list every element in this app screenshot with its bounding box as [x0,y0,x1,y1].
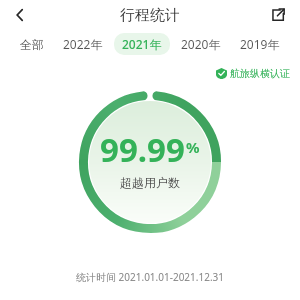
staticText: 2019年 [240,36,280,52]
staticText: 2020年 [181,36,221,52]
button[interactable]: 航旅纵横认证 [216,67,290,80]
button[interactable]: 2020年 [173,33,229,55]
button[interactable]: 2021年 [114,33,170,55]
button[interactable]: Back [6,1,34,29]
staticText: 行程统计 [120,6,180,25]
staticText: % [186,137,200,157]
staticText: 2022年 [63,36,103,52]
button[interactable]: Share [265,2,291,28]
staticText: 航旅纵横认证 [230,67,290,80]
button[interactable]: 2019年 [232,33,288,55]
staticText: 全部 [20,37,44,52]
staticText: 2021年 [122,36,162,52]
staticText: 统计时间 2021.01.01-2021.12.31 [0,270,300,284]
staticText: 99.99 [100,127,185,172]
staticText: 超越用户数 [120,175,180,190]
button[interactable]: 2022年 [55,33,111,55]
button[interactable]: 全部 [12,34,52,55]
